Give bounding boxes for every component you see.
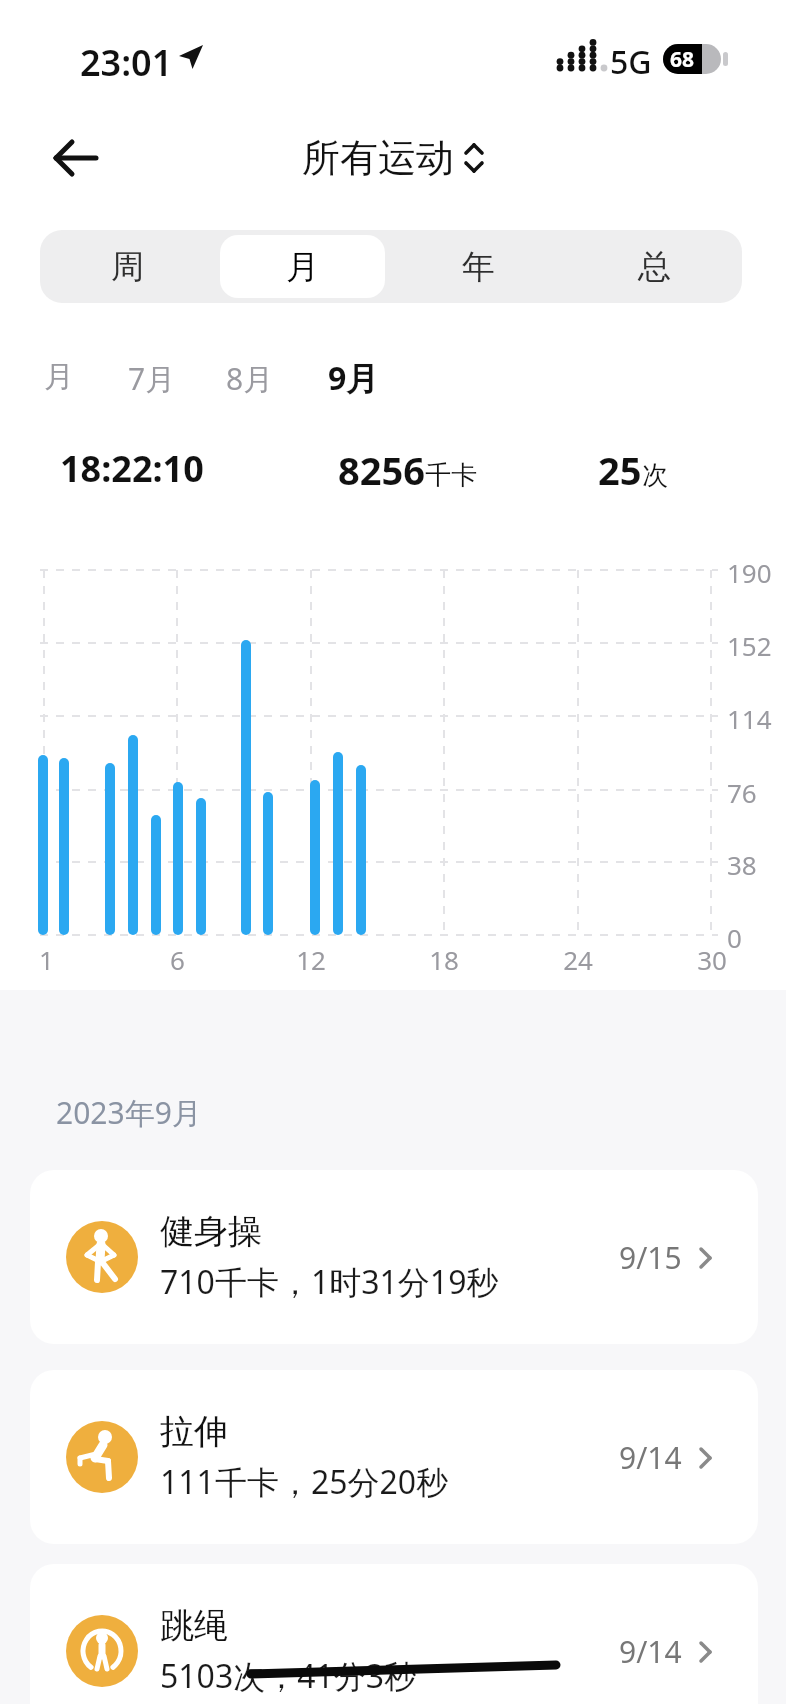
staticText: 所有运动 — [302, 134, 454, 182]
button[interactable]: 7月 — [128, 358, 176, 399]
staticText: 114 — [727, 701, 772, 736]
staticText: 38 — [727, 847, 757, 882]
staticText: 拉伸 — [160, 1410, 228, 1453]
staticText: 2023年9月 — [56, 1092, 202, 1133]
button[interactable]: 拉伸 — [30, 1370, 758, 1544]
staticText: 0 — [727, 920, 742, 955]
staticText: 千卡 — [425, 459, 477, 492]
staticText: 年 — [462, 246, 495, 288]
staticText: 周 — [111, 246, 144, 288]
staticText: 12 — [296, 942, 326, 977]
staticText: 月 — [44, 358, 74, 396]
button[interactable]: 9月 — [328, 356, 379, 400]
staticText: 18 — [429, 942, 459, 977]
button[interactable]: 健身操 — [30, 1170, 758, 1344]
staticText: 76 — [727, 775, 757, 810]
staticText: 9/14 — [619, 1631, 682, 1672]
button[interactable]: 所有运动 — [302, 134, 484, 182]
staticText: 8256 — [338, 444, 425, 496]
staticText: 8月 — [226, 358, 274, 399]
staticText: 6 — [170, 942, 185, 977]
button[interactable]: 8月 — [226, 358, 274, 399]
button[interactable]: 总 — [571, 235, 737, 298]
staticText: 30 — [697, 942, 727, 977]
button[interactable]: 月 — [220, 235, 385, 298]
staticText: 190 — [727, 555, 772, 590]
staticText: 月 — [286, 246, 319, 288]
staticText: 5103次，41分3秒 — [160, 1654, 417, 1698]
staticText: 9/14 — [619, 1437, 682, 1478]
staticText: 25 — [598, 444, 642, 496]
button[interactable]: 年 — [395, 235, 561, 298]
staticText: 9/15 — [619, 1237, 682, 1278]
staticText: 总 — [638, 246, 671, 288]
button[interactable]: 月 — [44, 358, 74, 396]
button[interactable]: 跳绳 — [30, 1564, 758, 1704]
staticText: 111千卡，25分20秒 — [160, 1460, 449, 1504]
staticText: 7月 — [128, 358, 176, 399]
staticText: 18:22:10 — [60, 444, 204, 493]
staticText: 23:01 — [80, 38, 173, 87]
staticText: 健身操 — [160, 1210, 262, 1253]
staticText: 1 — [39, 942, 54, 977]
staticText: 5G — [610, 40, 652, 84]
button[interactable] — [52, 138, 100, 178]
staticText: 710千卡，1时31分19秒 — [160, 1260, 499, 1304]
staticText: 次 — [642, 459, 668, 492]
button[interactable]: 周 — [45, 235, 210, 298]
staticText: 24 — [563, 942, 593, 977]
staticText: 9月 — [328, 356, 379, 400]
staticText: 68 — [670, 45, 695, 74]
staticText: 152 — [727, 628, 772, 663]
staticText: 跳绳 — [160, 1604, 228, 1647]
